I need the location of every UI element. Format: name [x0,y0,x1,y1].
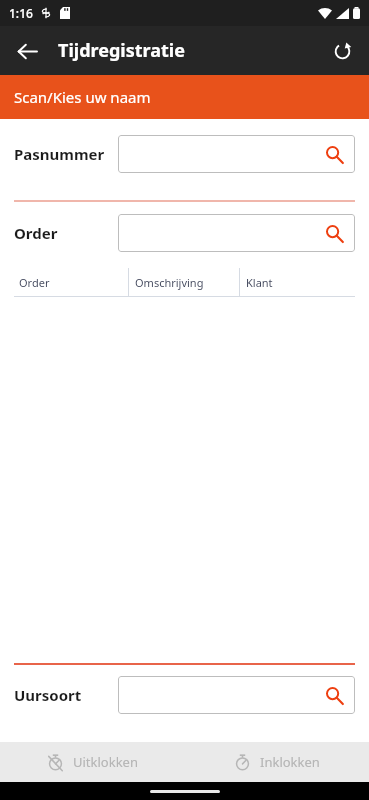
staticText: Order [19,275,50,290]
staticText: Uursoort [14,685,118,705]
button[interactable]: Search Uursoort [118,676,355,714]
staticText: Pasnummer [14,144,118,164]
staticText: Uitklokken [73,753,138,771]
button[interactable]: Inklokken [184,742,369,782]
button[interactable]: Refresh [321,30,363,72]
staticText: Order [14,223,118,243]
button[interactable]: Uitklokken [0,742,184,782]
staticText: Klant [246,275,273,290]
button[interactable]: Scan/Kies uw naam [0,75,369,119]
staticText: 1:16 [9,5,33,21]
button[interactable]: Search Order [118,214,355,252]
button[interactable]: Back [6,30,48,72]
staticText: Omschrijving [135,275,204,290]
staticText: Scan/Kies uw naam [14,87,151,107]
staticText: Tijdregistratie [58,38,185,63]
staticText: Inklokken [260,753,320,771]
button[interactable]: Search Pasnummer [118,135,355,173]
